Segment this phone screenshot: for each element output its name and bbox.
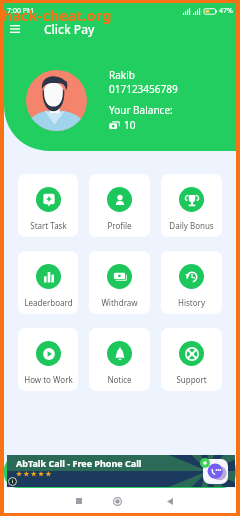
button[interactable]: Profile (89, 174, 150, 237)
staticText: Profile (107, 220, 132, 231)
staticText: Click Pay (44, 21, 95, 37)
button[interactable]: Recent apps (68, 490, 90, 512)
button[interactable]: AbTalk Call - Free Phone Call (7, 455, 235, 487)
staticText: 017123456789 (109, 82, 178, 96)
staticText: How to Work (24, 374, 73, 385)
staticText: Start Task (30, 220, 67, 231)
staticText: Daily Bonus (169, 220, 214, 231)
button[interactable]: Leaderboard (18, 251, 78, 314)
staticText: 7:00 PM (7, 6, 34, 16)
staticText: Rakib (109, 68, 135, 82)
button[interactable]: How to Work (18, 328, 78, 391)
button[interactable]: History (161, 251, 222, 314)
button[interactable]: Open navigation menu (4, 18, 26, 40)
button[interactable]: Back (159, 490, 181, 512)
staticText: History (178, 297, 205, 308)
staticText: Your Balance: (109, 103, 173, 117)
staticText: Withdraw (101, 297, 138, 308)
button[interactable]: Withdraw (89, 251, 150, 314)
staticText: Leaderboard (24, 297, 73, 308)
button[interactable]: Start Task (18, 174, 78, 237)
button[interactable]: Daily Bonus (161, 174, 222, 237)
staticText: Support (176, 374, 207, 385)
button[interactable]: Support (161, 328, 222, 391)
button[interactable]: Home (106, 490, 128, 512)
staticText: hack-cheat.org (3, 5, 112, 25)
staticText: 47% (219, 6, 233, 16)
button[interactable]: Notice (89, 328, 150, 391)
staticText: 10 (124, 118, 136, 132)
staticText: Notice (107, 374, 132, 385)
staticText: AbTalk Call - Free Phone Call (16, 457, 142, 469)
